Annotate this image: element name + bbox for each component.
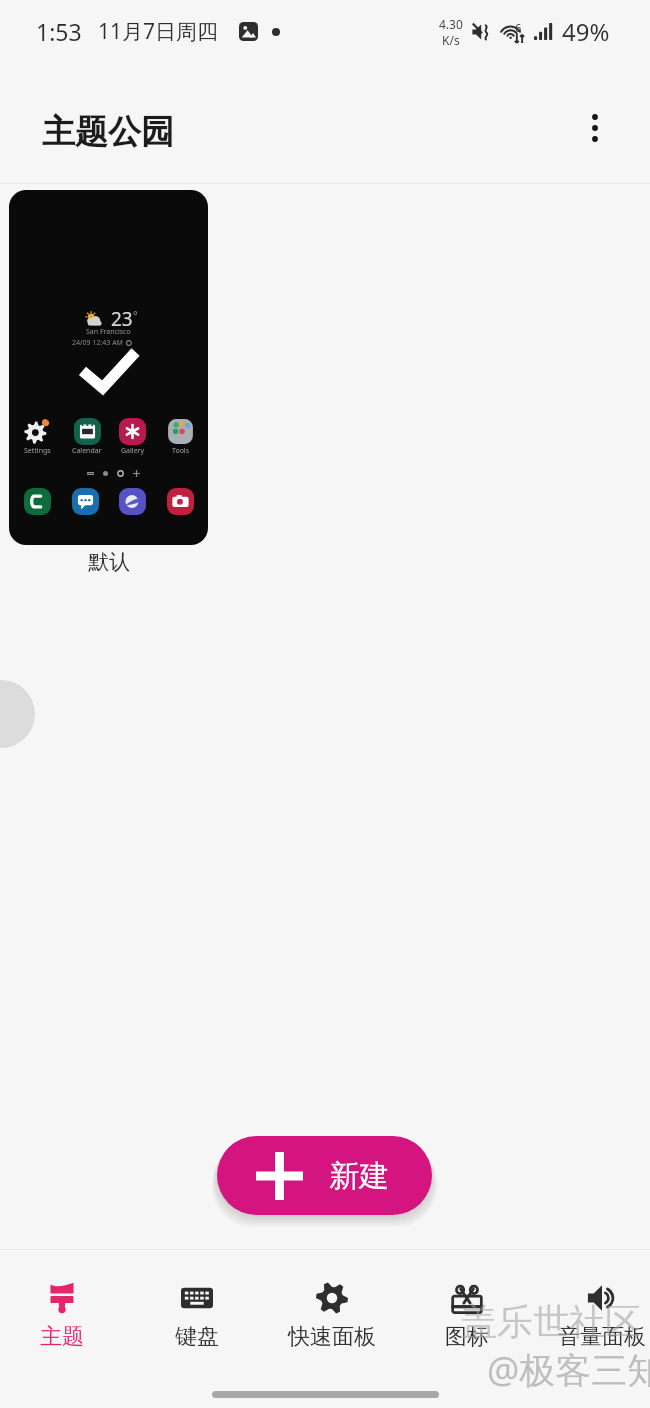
staticText: Tools xyxy=(172,446,190,456)
staticText: Calendar xyxy=(72,446,102,456)
button[interactable]: 新建 xyxy=(217,1136,432,1215)
staticText: 6 xyxy=(515,20,522,35)
staticText: 键盘 xyxy=(175,1323,219,1351)
staticText: ° xyxy=(133,307,138,322)
button[interactable]: 默认 theme preview xyxy=(9,190,208,545)
staticText: 盖乐世社区 xyxy=(461,1299,641,1344)
button[interactable]: 图标 xyxy=(400,1246,534,1370)
staticText: 23 xyxy=(111,306,133,332)
staticText: @极客三知 xyxy=(487,1345,650,1394)
button[interactable]: 键盘 xyxy=(130,1246,264,1370)
staticText: K/s xyxy=(442,32,460,48)
staticText: Settings xyxy=(24,446,51,456)
button[interactable]: 快速面板 xyxy=(265,1246,399,1370)
staticText: 1:53 xyxy=(36,16,82,47)
staticText: 49% xyxy=(562,15,610,48)
staticText: 4.30 xyxy=(439,16,463,32)
button[interactable]: 音量面板 xyxy=(535,1246,650,1370)
staticText: 主题 xyxy=(40,1323,84,1351)
staticText: 24/09 12:43 AM xyxy=(72,338,123,348)
button[interactable]: More options xyxy=(571,104,619,152)
staticText: Gallery xyxy=(121,446,145,456)
staticText: 快速面板 xyxy=(288,1323,376,1351)
staticText: 图标 xyxy=(445,1323,489,1351)
staticText: 主题公园 xyxy=(42,111,174,153)
button[interactable]: 主题 xyxy=(0,1246,129,1370)
staticText: 默认 xyxy=(88,549,130,575)
staticText: 音量面板 xyxy=(558,1323,646,1351)
staticText: San Francisco xyxy=(86,327,131,337)
staticText: 11月7日周四 xyxy=(98,17,219,46)
staticText: 新建 xyxy=(329,1157,389,1195)
